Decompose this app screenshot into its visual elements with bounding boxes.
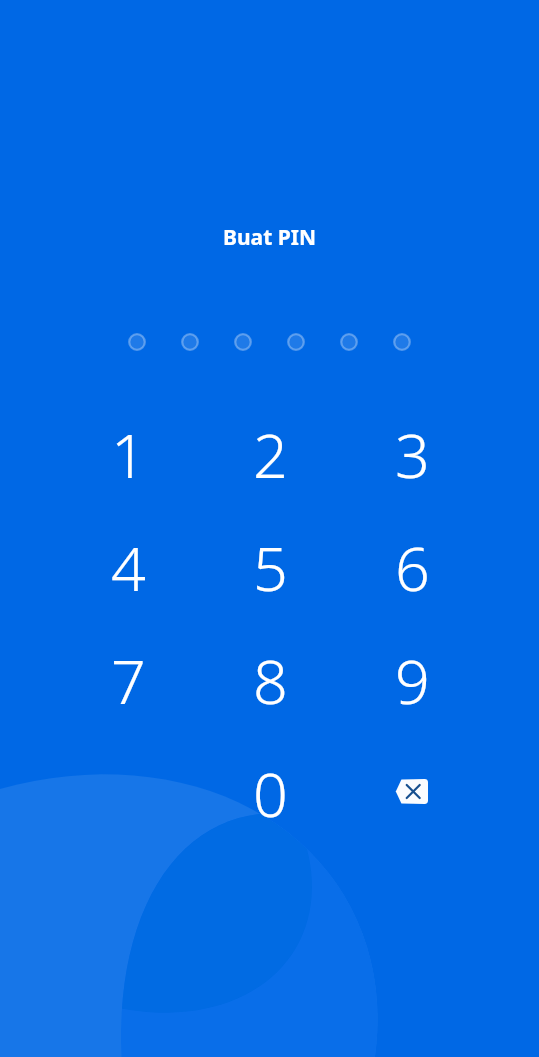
staticText: 0 [253,752,288,835]
button[interactable]: 2 [199,398,341,511]
button[interactable]: 1 [57,398,199,511]
staticText: Buat PIN [223,223,317,252]
staticText: 8 [253,639,288,722]
staticText: 7 [111,639,146,722]
staticText: 1 [111,413,146,496]
button[interactable]: 8 [199,624,341,737]
staticText: 9 [395,639,430,722]
button[interactable]: 9 [341,624,483,737]
button[interactable]: 0 [199,737,341,850]
button[interactable]: 7 [57,624,199,737]
staticText: 4 [111,526,146,609]
button[interactable]: 3 [341,398,483,511]
button[interactable]: Backspace [341,737,483,850]
button[interactable]: 6 [341,511,483,624]
button[interactable]: 4 [57,511,199,624]
staticText: 2 [253,413,288,496]
staticText: 6 [395,526,430,609]
staticText: 3 [395,413,430,496]
staticText: 5 [253,526,288,609]
button[interactable]: 5 [199,511,341,624]
